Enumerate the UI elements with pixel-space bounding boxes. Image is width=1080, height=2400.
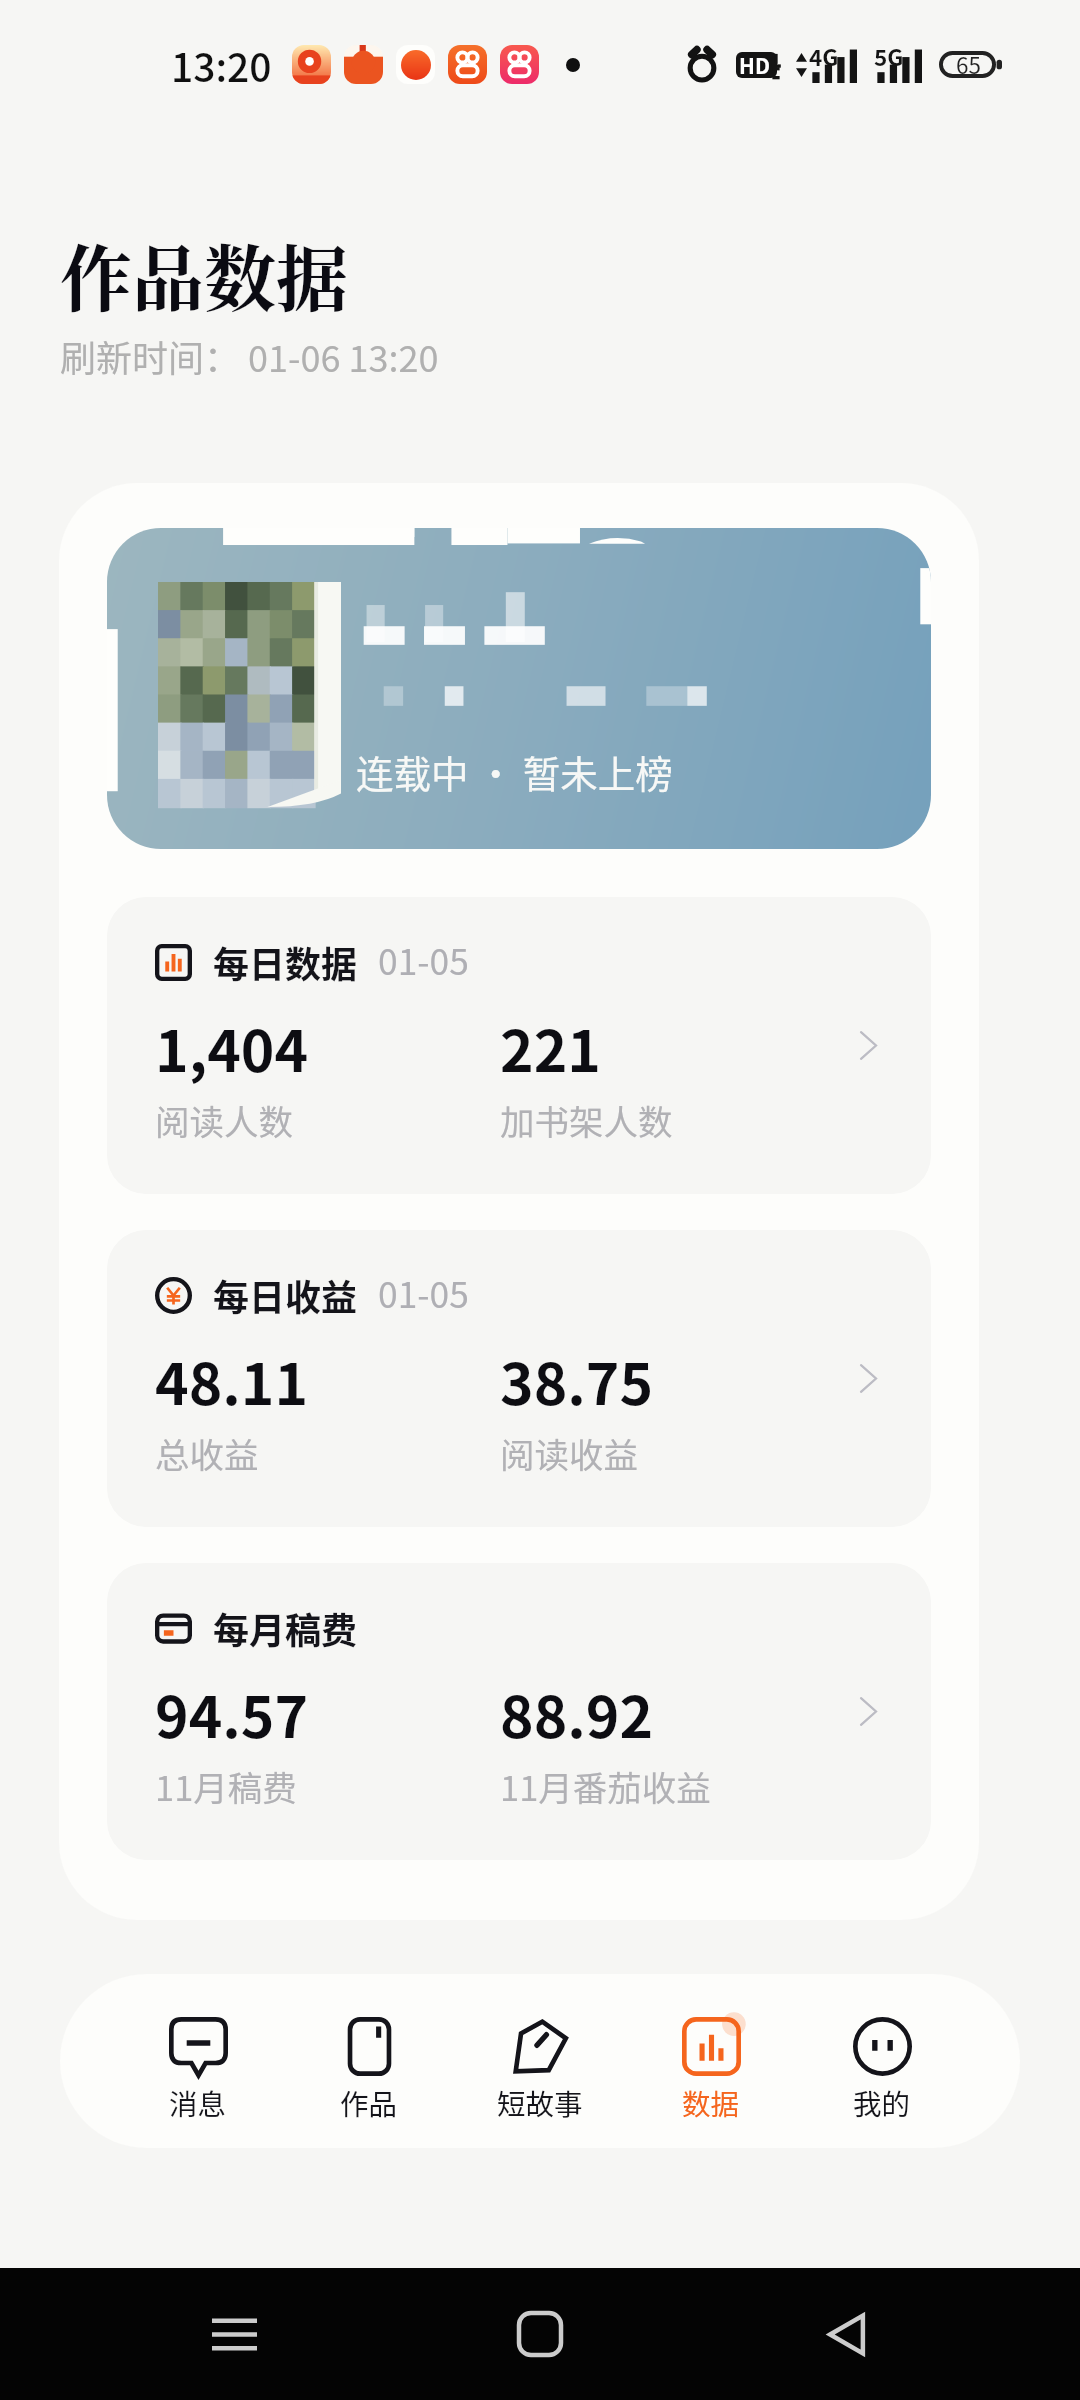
staticText: 消息 <box>169 2082 227 2123</box>
staticText: 刷新时间： 01-06 13:20 <box>60 330 439 382</box>
staticText: 48.11 <box>155 1339 309 1422</box>
button[interactable]: 作品 <box>285 2000 453 2123</box>
staticText: 作品 <box>340 2082 398 2123</box>
staticText: 短故事 <box>497 2082 583 2123</box>
staticText: 65 <box>956 48 981 81</box>
button[interactable]: 连载中 · 暂未上榜 <box>107 528 931 849</box>
staticText: 01-05 <box>378 934 469 985</box>
button[interactable]: 每月稿费 <box>107 1563 931 1860</box>
button[interactable]: Home <box>486 2280 594 2388</box>
staticText: 加书架人数 <box>500 1095 673 1145</box>
button[interactable]: Back <box>792 2280 900 2388</box>
staticText: 11月番茄收益 <box>500 1761 711 1811</box>
staticText: 38.75 <box>500 1339 654 1422</box>
staticText: 每日数据 <box>213 936 358 988</box>
button[interactable]: 消息 <box>114 2000 282 2123</box>
button[interactable]: 每日收益 <box>107 1230 931 1527</box>
button[interactable]: 数据 <box>627 2000 795 2123</box>
staticText: 01-05 <box>378 1267 469 1318</box>
staticText: 5G <box>874 40 904 73</box>
staticText: 4G <box>809 40 839 73</box>
staticText: 总收益 <box>155 1428 259 1478</box>
staticText: HD <box>739 50 770 80</box>
staticText: 11月稿费 <box>155 1761 297 1811</box>
staticText: 作品数据 <box>60 222 349 325</box>
button[interactable]: 短故事 <box>456 2000 624 2123</box>
staticText: 94.57 <box>155 1672 309 1755</box>
staticText: 每日收益 <box>213 1269 358 1321</box>
staticText: 221 <box>500 1006 601 1089</box>
button[interactable]: Recents <box>180 2280 288 2388</box>
button[interactable]: 每日数据 <box>107 897 931 1194</box>
staticText: 每月稿费 <box>213 1602 358 1654</box>
staticText: 88.92 <box>500 1672 654 1755</box>
staticText: 数据 <box>682 2082 740 2123</box>
staticText: 我的 <box>853 2082 911 2123</box>
staticText: 连载中 · 暂未上榜 <box>356 744 673 798</box>
staticText: 阅读收益 <box>500 1428 638 1478</box>
button[interactable]: 我的 <box>798 2000 966 2123</box>
staticText: 1,404 <box>155 1006 309 1089</box>
staticText: 阅读人数 <box>155 1095 293 1145</box>
staticText: 13:20 <box>171 37 272 93</box>
